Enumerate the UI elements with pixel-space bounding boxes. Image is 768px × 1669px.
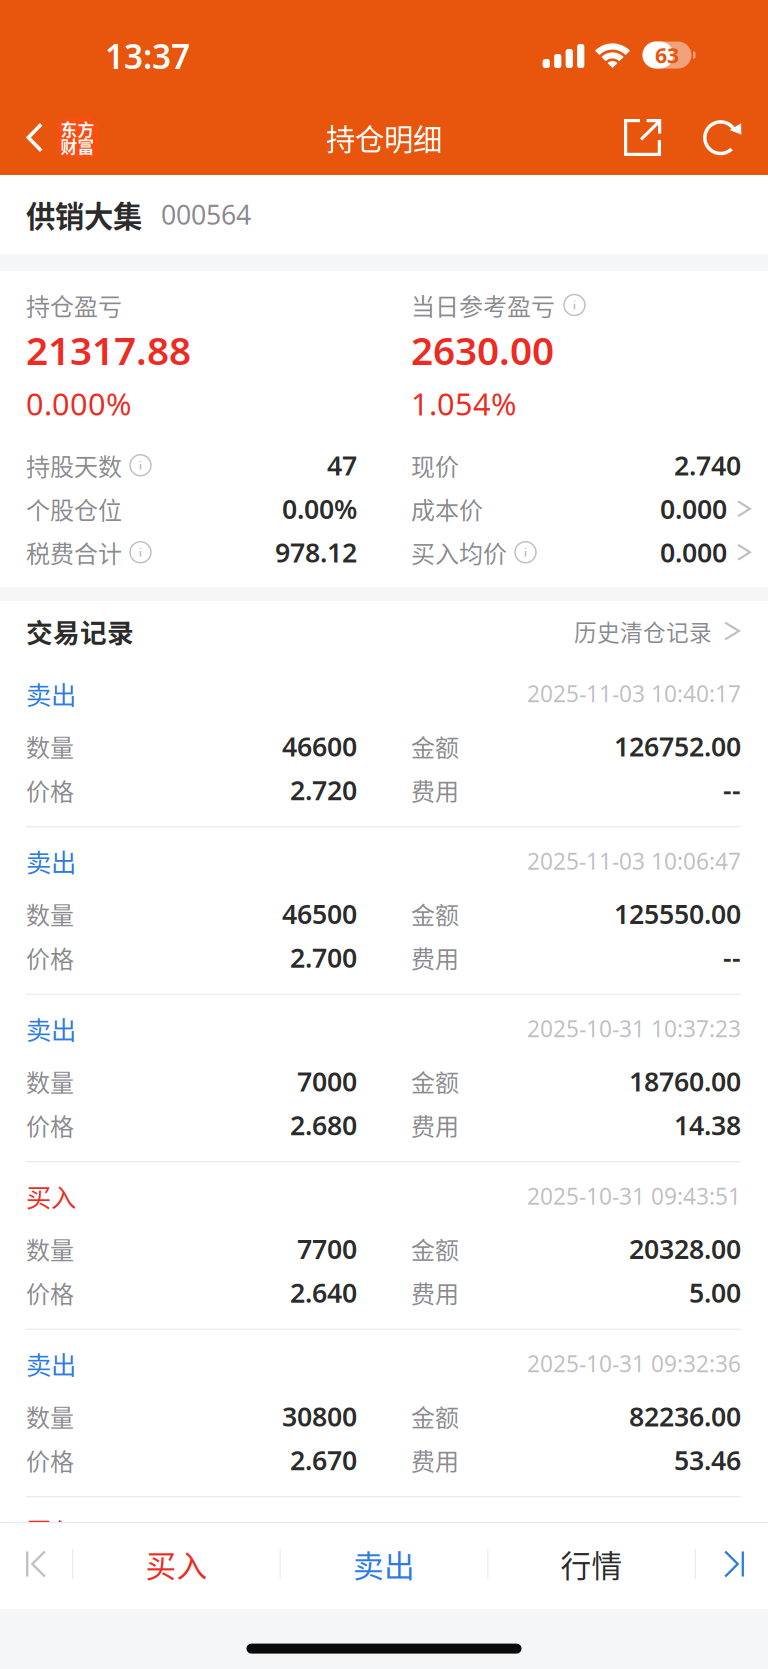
staticText: 2025-11-03 10:40:17 bbox=[527, 678, 741, 708]
staticText: 30800 bbox=[282, 1398, 357, 1434]
staticText: 82236.00 bbox=[629, 1398, 741, 1434]
staticText: 2.740 bbox=[674, 447, 741, 483]
staticText: 数量 bbox=[26, 1399, 74, 1434]
staticText: 125550.00 bbox=[614, 896, 741, 931]
staticText: 现价 bbox=[411, 448, 459, 483]
staticText: 0.000 bbox=[660, 534, 727, 570]
staticText: 2025-10-31 09:32:36 bbox=[527, 1348, 741, 1378]
staticText: 卖出 bbox=[26, 1010, 76, 1047]
button[interactable]: 上一个 bbox=[0, 1522, 72, 1609]
button[interactable]: 分享 bbox=[610, 107, 675, 168]
staticText: 000564 bbox=[161, 197, 251, 232]
staticText: 2630.00 bbox=[411, 324, 554, 376]
staticText: 金额 bbox=[411, 1399, 459, 1434]
staticText: 卖出 bbox=[26, 675, 76, 712]
staticText: 费用 bbox=[411, 1443, 459, 1477]
button[interactable]: 刷新 bbox=[691, 107, 754, 168]
staticText: 数量 bbox=[26, 1064, 74, 1099]
staticText: 当日参考盈亏 bbox=[411, 288, 555, 322]
staticText: 费用 bbox=[411, 1275, 459, 1310]
staticText: 价格 bbox=[26, 1443, 74, 1477]
staticText: 7700 bbox=[297, 1231, 357, 1266]
staticText: 0.000 bbox=[660, 491, 727, 526]
staticText: 0.00% bbox=[282, 491, 357, 526]
staticText: 21317.88 bbox=[26, 324, 191, 376]
staticText: 卖出 bbox=[26, 1345, 76, 1382]
staticText: 持仓明细 bbox=[326, 116, 442, 159]
staticText: 2.670 bbox=[290, 1442, 357, 1478]
staticText: 数量 bbox=[26, 729, 74, 764]
staticText: 2025-10-31 10:37:23 bbox=[527, 1013, 741, 1043]
button[interactable]: 返回东方财富 bbox=[0, 109, 112, 166]
staticText: 金额 bbox=[411, 896, 459, 931]
staticText: -- bbox=[723, 940, 741, 975]
staticText: 20328.00 bbox=[629, 1231, 741, 1266]
staticText: 46500 bbox=[282, 896, 357, 931]
staticText: 价格 bbox=[26, 773, 74, 807]
staticText: 买入 bbox=[26, 1178, 76, 1214]
staticText: 税费合计 bbox=[26, 535, 122, 570]
staticText: 14.38 bbox=[674, 1107, 741, 1143]
staticText: 13:37 bbox=[105, 34, 190, 78]
staticText: 53.46 bbox=[674, 1442, 741, 1478]
staticText: 卖出 bbox=[353, 1542, 415, 1586]
staticText: 63 bbox=[655, 41, 679, 69]
button[interactable]: 卖出 bbox=[281, 1522, 487, 1609]
staticText: 供销大集 bbox=[26, 193, 142, 236]
staticText: 买入均价 bbox=[411, 535, 507, 570]
button[interactable]: 下一个 bbox=[696, 1522, 768, 1609]
staticText: 47 bbox=[327, 447, 357, 483]
staticText: 金额 bbox=[411, 729, 459, 764]
staticText: 持仓盈亏 bbox=[26, 288, 122, 322]
staticText: 行情 bbox=[561, 1542, 623, 1586]
staticText: 0.000% bbox=[26, 383, 131, 424]
staticText: 价格 bbox=[26, 940, 74, 975]
staticText: 东方 bbox=[60, 117, 94, 141]
staticText: 金额 bbox=[411, 1064, 459, 1099]
staticText: 买入 bbox=[145, 1542, 207, 1586]
staticText: 持股天数 bbox=[26, 448, 122, 483]
staticText: 数量 bbox=[26, 896, 74, 931]
staticText: 2025-10-31 09:43:51 bbox=[527, 1181, 741, 1211]
staticText: 2.640 bbox=[290, 1275, 357, 1310]
button[interactable]: 行情 bbox=[488, 1522, 695, 1609]
staticText: 卖出 bbox=[26, 843, 76, 879]
staticText: -- bbox=[723, 772, 741, 808]
staticText: 2.680 bbox=[290, 1107, 357, 1143]
staticText: 2.700 bbox=[290, 940, 357, 975]
staticText: 价格 bbox=[26, 1275, 74, 1310]
staticText: 个股仓位 bbox=[26, 491, 122, 526]
staticText: 价格 bbox=[26, 1108, 74, 1142]
staticText: 978.12 bbox=[275, 534, 357, 570]
staticText: 1.054% bbox=[411, 383, 516, 424]
staticText: 5.00 bbox=[689, 1275, 741, 1310]
staticText: 2025-11-03 10:06:47 bbox=[527, 846, 741, 876]
staticText: 费用 bbox=[411, 1108, 459, 1142]
staticText: 126752.00 bbox=[614, 728, 741, 764]
button[interactable]: 买入 bbox=[73, 1522, 280, 1609]
staticText: 数量 bbox=[26, 1231, 74, 1266]
staticText: 18760.00 bbox=[629, 1063, 741, 1099]
staticText: 历史清仓记录 bbox=[574, 615, 712, 647]
staticText: 成本价 bbox=[411, 491, 483, 526]
staticText: 财富 bbox=[60, 134, 94, 158]
staticText: 买入 bbox=[26, 1511, 76, 1548]
staticText: 费用 bbox=[411, 940, 459, 975]
staticText: 交易记录 bbox=[26, 612, 134, 650]
button[interactable]: 历史清仓记录 bbox=[574, 615, 740, 647]
staticText: 2.720 bbox=[290, 772, 357, 808]
staticText: 46600 bbox=[282, 728, 357, 764]
staticText: 金额 bbox=[411, 1231, 459, 1266]
staticText: 7000 bbox=[297, 1063, 357, 1099]
staticText: 费用 bbox=[411, 773, 459, 807]
